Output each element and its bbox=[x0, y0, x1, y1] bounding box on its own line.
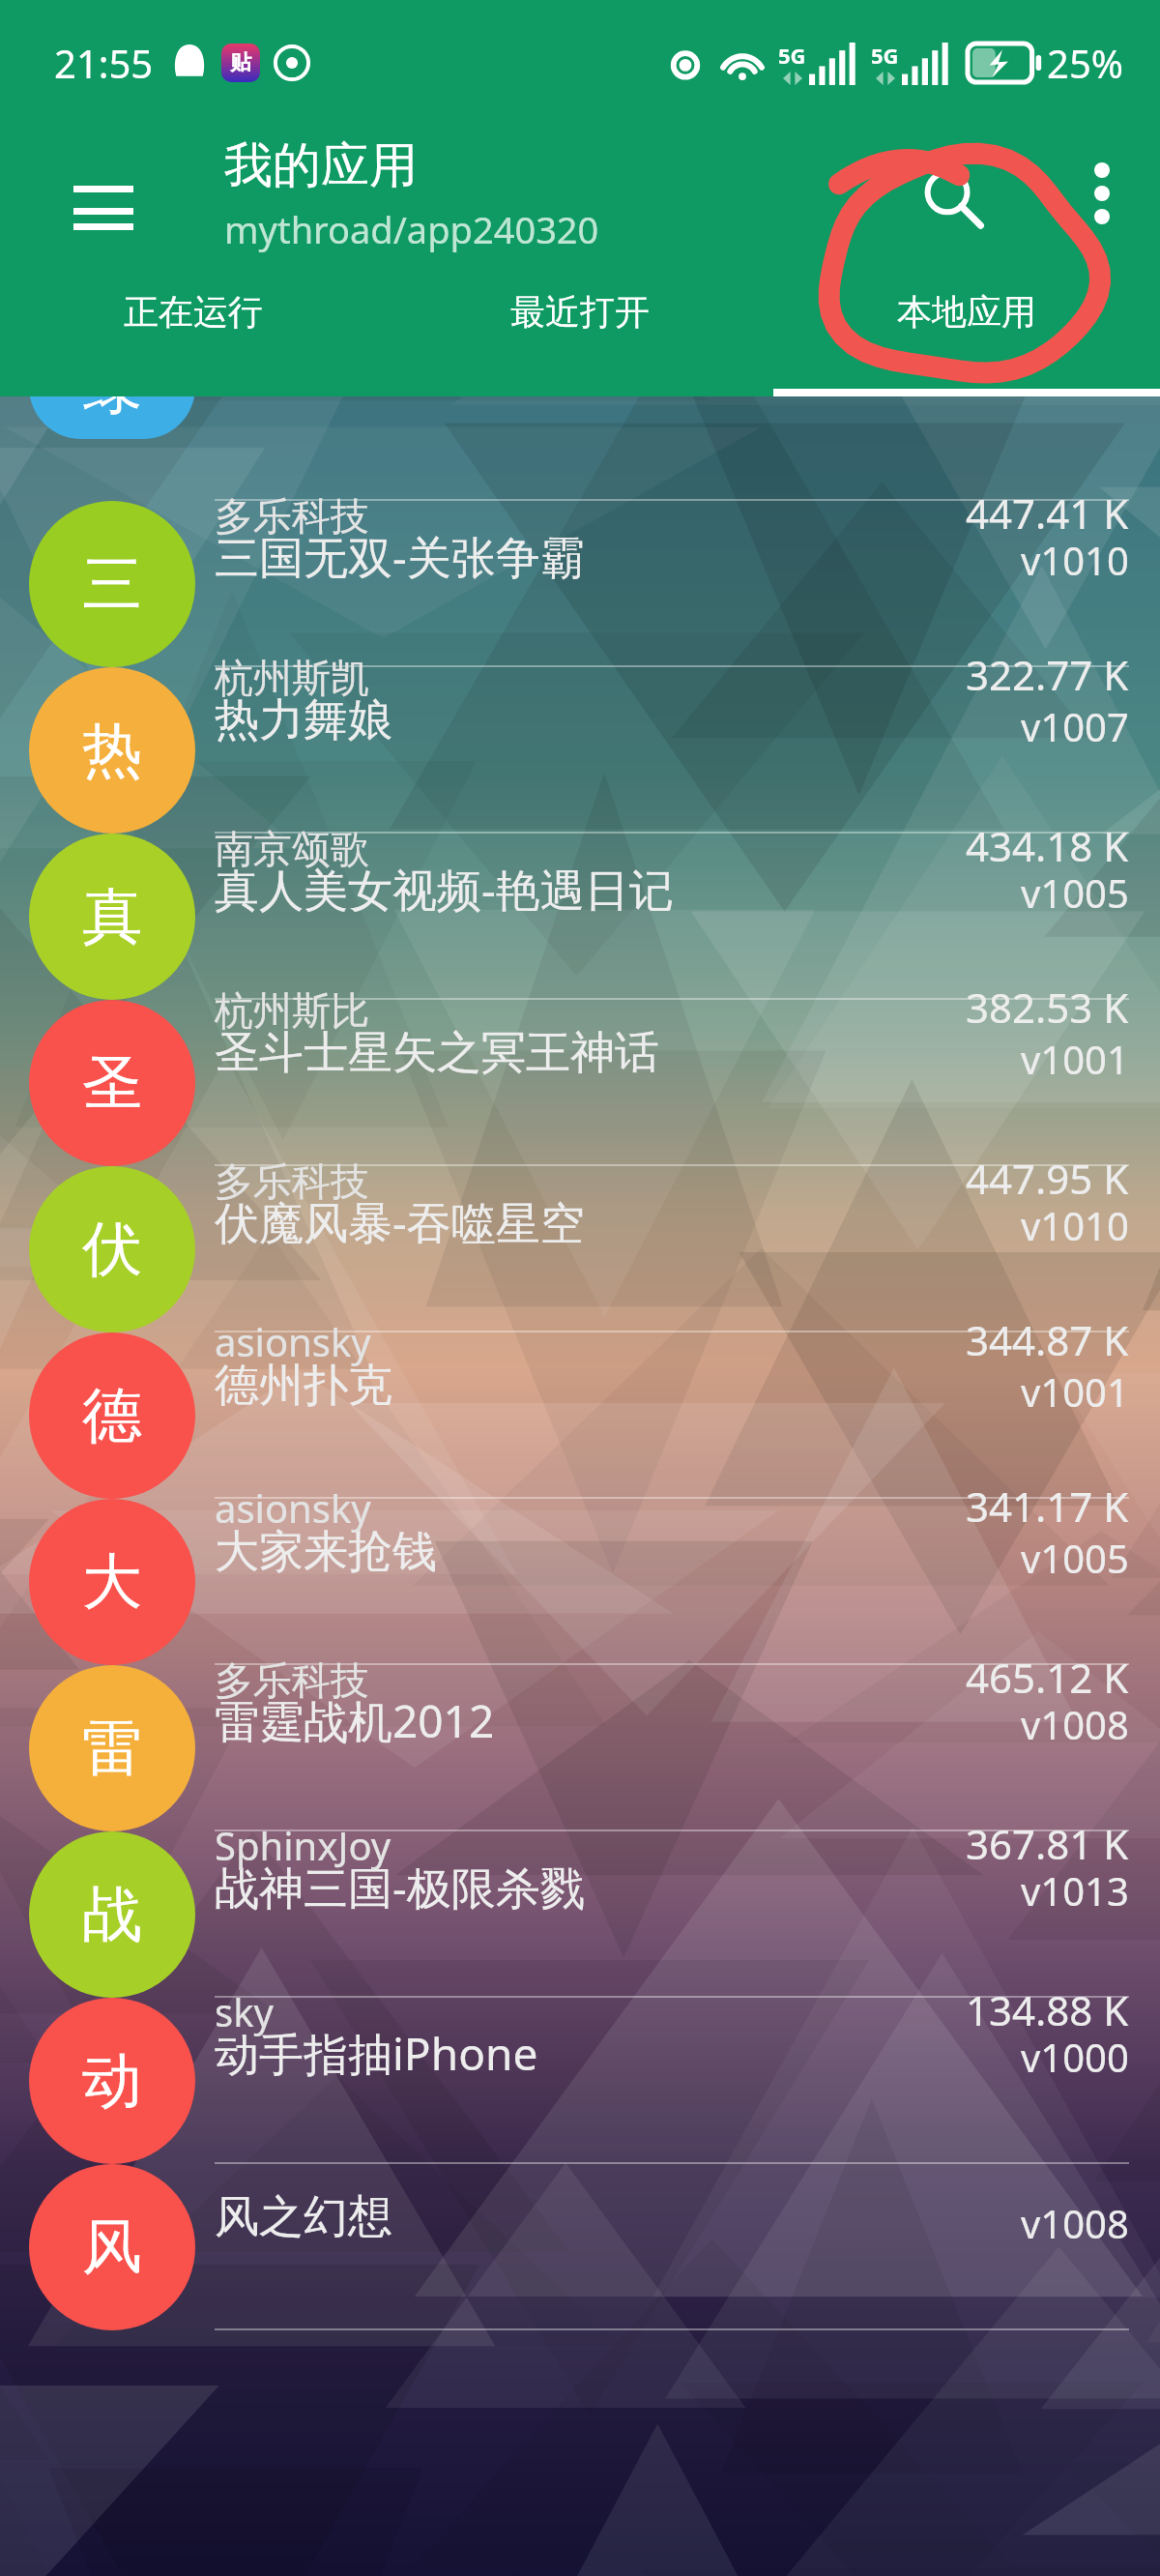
staticText: 376.51 K bbox=[966, 313, 1129, 368]
button[interactable]: 大 bbox=[0, 1499, 1160, 1665]
staticText: 21:55 bbox=[54, 37, 154, 89]
staticText: asionsky bbox=[215, 1481, 371, 1534]
staticText: 367.81 K bbox=[966, 1816, 1129, 1871]
staticText: 大 bbox=[82, 1544, 142, 1620]
staticText: 热力舞娘 bbox=[215, 692, 392, 748]
staticText: asionsky bbox=[215, 1315, 371, 1367]
button[interactable]: Search bbox=[899, 145, 1005, 251]
staticText: v1010 bbox=[1021, 534, 1129, 586]
staticText: 雷 bbox=[82, 1711, 142, 1786]
button[interactable]: 热 bbox=[0, 667, 1160, 834]
staticText: v1013 bbox=[1021, 1864, 1129, 1917]
button[interactable]: 本地应用 bbox=[773, 290, 1160, 334]
staticText: 多乐科技 bbox=[215, 492, 369, 541]
staticText: 热 bbox=[82, 713, 142, 788]
staticText: 最近打开 bbox=[510, 290, 650, 334]
staticText: 341.17 K bbox=[966, 1478, 1129, 1534]
staticText: 344.87 K bbox=[966, 1312, 1129, 1367]
button[interactable]: 最近打开 bbox=[387, 290, 773, 334]
staticText: 322.77 K bbox=[966, 647, 1129, 702]
button[interactable]: 绿 bbox=[0, 396, 1160, 501]
staticText: 圣斗士星矢之冥王神话 bbox=[215, 1025, 659, 1081]
staticText: 465.12 K bbox=[966, 1650, 1129, 1705]
staticText: 434.18 K bbox=[966, 818, 1129, 873]
staticText: v1000 bbox=[1021, 2031, 1129, 2083]
staticText: 风之幻想 bbox=[215, 2189, 392, 2245]
staticText: SphinxJoy bbox=[215, 1819, 391, 1871]
staticText: 三国无双-关张争霸 bbox=[215, 526, 585, 587]
staticText: 5G bbox=[871, 41, 899, 70]
staticText: v1005 bbox=[1021, 1532, 1129, 1584]
staticText: 正在运行 bbox=[124, 290, 263, 334]
staticText: v1001 bbox=[1021, 1033, 1129, 1085]
staticText: 动手指抽iPhone bbox=[215, 2023, 538, 2084]
staticText: v1007 bbox=[1021, 700, 1129, 752]
staticText: 25% bbox=[1047, 37, 1123, 89]
staticText: v1005 bbox=[1021, 866, 1129, 919]
button[interactable]: 德 bbox=[0, 1332, 1160, 1499]
staticText: 447.95 K bbox=[966, 1151, 1129, 1206]
staticText: 战神三国-极限杀戮 bbox=[215, 1857, 585, 1917]
staticText: 南京颂歌 bbox=[215, 825, 369, 873]
staticText: 风 bbox=[82, 2210, 142, 2285]
button[interactable]: 风 bbox=[0, 2164, 1160, 2330]
staticText: 382.53 K bbox=[966, 980, 1129, 1035]
staticText: mythroad/app240320 bbox=[224, 204, 599, 254]
staticText: 伏魔风暴-吞噬星空 bbox=[215, 1191, 585, 1252]
staticText: 134.88 K bbox=[966, 1982, 1129, 2037]
button[interactable]: Open navigation menu bbox=[50, 155, 157, 261]
staticText: 我的应用 bbox=[224, 135, 418, 196]
staticText: 杭州斯凯 bbox=[215, 654, 369, 702]
staticText: 雷霆战机2012 bbox=[215, 1690, 495, 1751]
staticText: 三 bbox=[82, 546, 142, 622]
staticText: 德 bbox=[82, 1378, 142, 1453]
button[interactable]: 正在运行 bbox=[0, 290, 387, 334]
staticText: 真人美女视频-艳遇日记 bbox=[215, 859, 674, 920]
button[interactable]: 圣 bbox=[0, 1000, 1160, 1166]
staticText: 动 bbox=[82, 2043, 142, 2119]
button[interactable]: 伏 bbox=[0, 1166, 1160, 1332]
staticText: 伏 bbox=[82, 1212, 142, 1287]
staticText: 杭州斯比 bbox=[215, 986, 369, 1035]
staticText: 本地应用 bbox=[897, 290, 1036, 334]
staticText: v1008 bbox=[1021, 1698, 1129, 1750]
button[interactable]: 真 bbox=[0, 834, 1160, 1000]
staticText: 杭州洋葱头 bbox=[215, 320, 408, 368]
staticText: 贴 bbox=[230, 49, 251, 76]
staticText: 德州扑克 bbox=[215, 1358, 392, 1414]
staticText: 5G bbox=[778, 41, 806, 70]
staticText: 447.41 K bbox=[966, 485, 1129, 541]
button[interactable]: 雷 bbox=[0, 1665, 1160, 1831]
staticText: v1008 bbox=[1021, 2197, 1129, 2249]
button[interactable]: 动 bbox=[0, 1998, 1160, 2164]
button[interactable]: More options bbox=[1054, 145, 1150, 242]
button[interactable]: 三 bbox=[0, 501, 1160, 667]
staticText: v1001 bbox=[1021, 1365, 1129, 1418]
staticText: 多乐科技 bbox=[215, 1157, 369, 1206]
button[interactable]: 战 bbox=[0, 1831, 1160, 1998]
staticText: 大家来抢钱 bbox=[215, 1524, 437, 1580]
staticText: 多乐科技 bbox=[215, 1656, 369, 1705]
staticText: v1010 bbox=[1021, 1199, 1129, 1251]
staticText: 圣 bbox=[82, 1045, 142, 1121]
staticText: 战 bbox=[82, 1877, 142, 1952]
staticText: 绿 bbox=[82, 349, 142, 424]
staticText: sky bbox=[215, 1985, 274, 2037]
staticText: 真 bbox=[82, 879, 142, 954]
